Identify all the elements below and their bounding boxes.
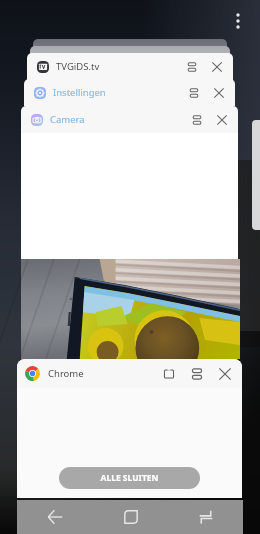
staticText: Chrome bbox=[48, 367, 84, 380]
button[interactable]: Split screen bbox=[187, 110, 207, 130]
staticText: Camera bbox=[50, 113, 85, 126]
button[interactable]: Close bbox=[214, 363, 236, 385]
button[interactable]: Camera bbox=[21, 106, 238, 133]
button[interactable]: Home bbox=[93, 500, 168, 534]
button[interactable]: Instellingen bbox=[24, 79, 235, 106]
button[interactable]: Split screen bbox=[184, 83, 204, 103]
button[interactable]: Split screen bbox=[186, 363, 208, 385]
button[interactable]: Pop-up view bbox=[158, 363, 180, 385]
button[interactable]: More options bbox=[228, 8, 248, 34]
button[interactable]: Back bbox=[17, 500, 93, 534]
staticText: ALLE SLUITEN bbox=[100, 472, 159, 484]
button[interactable]: Close bbox=[209, 83, 229, 103]
button[interactable]: TVGiDS.tv bbox=[27, 53, 233, 80]
button[interactable]: Close bbox=[212, 110, 232, 130]
button[interactable]: Chrome bbox=[17, 359, 242, 498]
staticText: TVGiDS.tv bbox=[56, 60, 100, 73]
button[interactable]: Split screen bbox=[182, 57, 202, 77]
button[interactable]: Recents bbox=[168, 500, 243, 534]
staticText: Instellingen bbox=[53, 86, 106, 99]
button[interactable]: ALLE SLUITEN bbox=[59, 467, 200, 489]
button[interactable]: Close bbox=[207, 57, 227, 77]
